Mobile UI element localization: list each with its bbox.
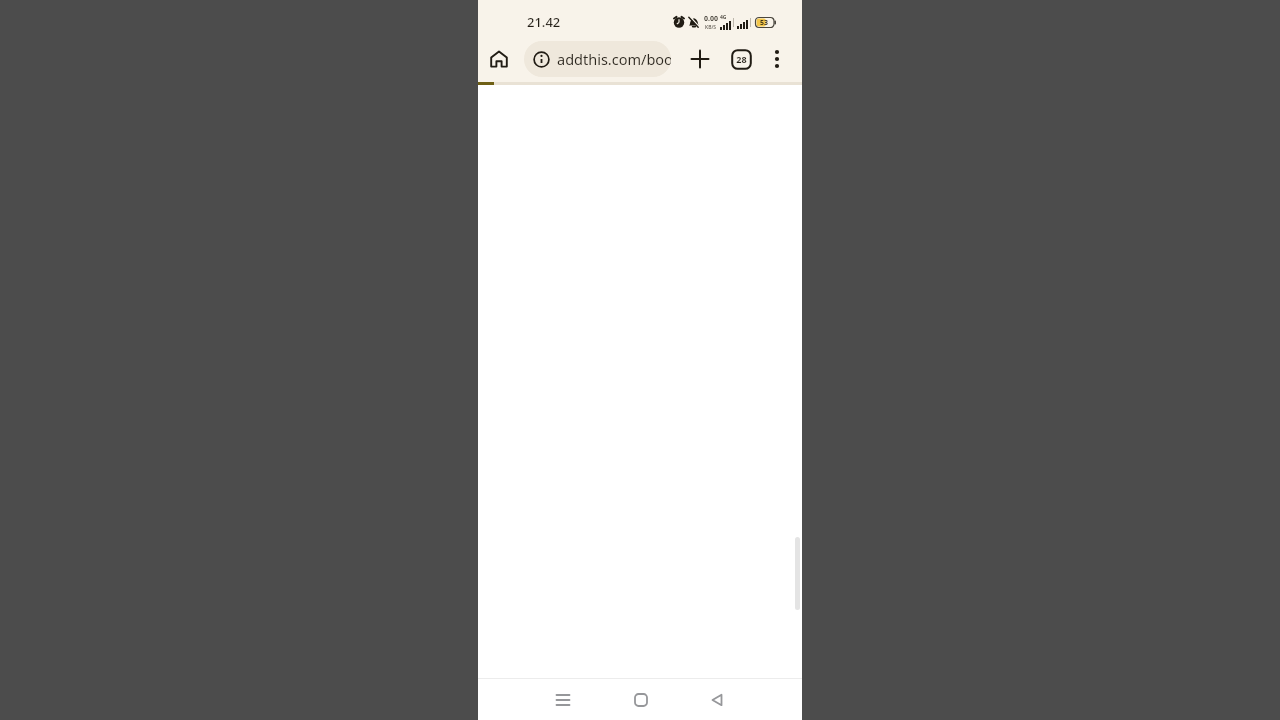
staticText: 53 <box>760 18 769 28</box>
button[interactable] <box>695 679 739 720</box>
button[interactable] <box>619 679 663 720</box>
staticText: addthis.com/bool <box>557 49 671 69</box>
button[interactable] <box>688 47 712 71</box>
button[interactable] <box>541 679 585 720</box>
staticText: KB/S <box>705 24 717 31</box>
staticText: 0.00 <box>704 14 718 24</box>
button[interactable] <box>764 46 790 72</box>
staticText: 28 <box>736 53 747 65</box>
staticText: 21.42 <box>527 13 561 31</box>
button[interactable]: addthis.com/bool <box>524 41 671 77</box>
button[interactable]: 28 <box>729 47 753 71</box>
staticText: 4G <box>720 14 727 21</box>
button[interactable] <box>486 46 512 72</box>
